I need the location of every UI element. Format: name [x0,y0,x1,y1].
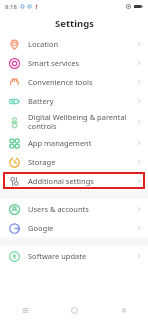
button[interactable]: Users & accounts [0,199,148,218]
button[interactable]: Smart services [0,53,148,72]
button[interactable]: Additional settings [0,171,148,190]
button[interactable]: Back [99,301,148,320]
staticText: Settings [55,17,94,30]
button[interactable]: Storage [0,152,148,171]
staticText: Storage [28,157,137,167]
staticText: 8:18 [5,3,17,11]
staticText: Digital Wellbeing & parental controls [28,112,137,132]
staticText: Smart services [28,58,137,68]
button[interactable]: Digital Wellbeing & parental controls [0,110,148,133]
staticText: Software update [28,251,137,261]
staticText: Battery [28,96,137,106]
button[interactable]: App management [0,133,148,152]
staticText: Additional settings [28,176,137,186]
staticText: Google [28,223,137,233]
button[interactable]: Home [50,301,99,320]
staticText: Users & accounts [28,204,137,214]
button[interactable]: Google [0,218,148,237]
staticText: Convenience tools [28,77,137,87]
staticText: Location [28,39,137,49]
staticText: App management [28,138,137,148]
button[interactable]: Location [0,34,148,53]
button[interactable]: Convenience tools [0,72,148,91]
button[interactable]: Software update [0,246,148,265]
button[interactable]: Recents [0,301,50,320]
button[interactable]: Battery [0,91,148,110]
